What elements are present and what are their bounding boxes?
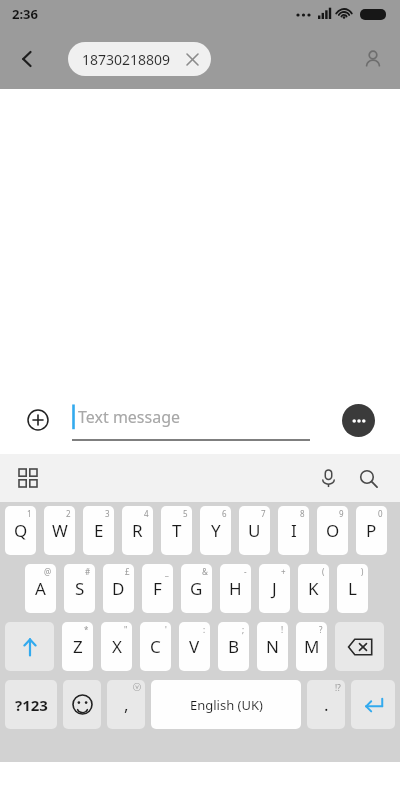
button[interactable]: Y (200, 506, 231, 555)
button[interactable]: Add attachment (19, 401, 57, 439)
staticText: £ (125, 566, 130, 577)
button[interactable]: K (298, 564, 329, 613)
button[interactable]: Z (62, 622, 93, 671)
staticText: _ (165, 566, 169, 577)
staticText: # (85, 566, 91, 577)
button[interactable]: L (337, 564, 368, 613)
button[interactable] (5, 622, 54, 671)
staticText: 2:36 (12, 5, 38, 23)
staticText: B (228, 635, 240, 658)
button[interactable]: C (140, 622, 171, 671)
staticText: C (150, 635, 161, 658)
staticText: 8 (300, 508, 305, 519)
button[interactable]: D (103, 564, 134, 613)
button[interactable]: O (317, 506, 348, 555)
staticText: R (132, 519, 143, 542)
button[interactable]: E (83, 506, 114, 555)
button[interactable]: Voice input (308, 458, 348, 498)
staticText: T (172, 519, 182, 542)
staticText: . (324, 693, 329, 716)
button[interactable]: Keyboard menu (8, 458, 48, 498)
staticText: ; (242, 624, 245, 635)
button[interactable]: W (44, 506, 75, 555)
staticText: 7 (261, 508, 266, 519)
staticText: S (75, 577, 85, 600)
staticText: 18730218809 (82, 50, 171, 69)
staticText: 6 (222, 508, 227, 519)
staticText: K (308, 577, 319, 600)
staticText: & (202, 566, 208, 577)
button[interactable] (335, 622, 384, 671)
staticText: H (229, 577, 242, 600)
button[interactable]: 18730218809 (68, 42, 211, 76)
staticText: ! (281, 624, 284, 635)
button[interactable] (63, 680, 101, 729)
staticText: U (248, 519, 261, 542)
button[interactable]: Contacts (346, 32, 400, 86)
button[interactable]: R (122, 506, 153, 555)
staticText: ' (165, 624, 167, 635)
staticText: J (272, 577, 277, 600)
staticText: M (304, 635, 320, 658)
staticText: English (UK) (190, 696, 263, 714)
button[interactable]: H (220, 564, 251, 613)
staticText: X (112, 635, 122, 658)
staticText: N (266, 635, 279, 658)
staticText: I (291, 519, 297, 542)
button[interactable]: English (UK) (151, 680, 301, 729)
staticText: V (189, 635, 200, 658)
button[interactable]: Back (0, 32, 54, 86)
staticText: Z (73, 635, 83, 658)
button[interactable]: T (161, 506, 192, 555)
button[interactable]: , (107, 680, 145, 729)
staticText: , (124, 693, 129, 716)
button[interactable]: X (101, 622, 132, 671)
button[interactable]: ?123 (5, 680, 57, 729)
staticText: 3 (105, 508, 110, 519)
button[interactable]: A (25, 564, 56, 613)
staticText: P (366, 519, 377, 542)
staticText: W (52, 519, 68, 542)
staticText: A (35, 577, 46, 600)
staticText: 1 (27, 508, 32, 519)
staticText: E (94, 519, 104, 542)
staticText: : (203, 624, 206, 635)
staticText: ? (319, 624, 323, 635)
button[interactable]: Text message (72, 399, 310, 441)
staticText: D (112, 577, 125, 600)
button[interactable]: V (179, 622, 210, 671)
staticText: G (190, 577, 203, 600)
button[interactable]: Remove recipient (183, 50, 201, 68)
staticText: " (124, 624, 128, 635)
staticText: * (84, 624, 89, 635)
button[interactable]: I (278, 506, 309, 555)
button[interactable]: M (296, 622, 327, 671)
button[interactable]: Search (348, 458, 388, 498)
button[interactable]: Q (5, 506, 36, 555)
button[interactable]: B (218, 622, 249, 671)
button[interactable]: J (259, 564, 290, 613)
staticText: F (153, 577, 162, 600)
button[interactable]: S (64, 564, 95, 613)
staticText: Y (211, 519, 221, 542)
staticText: !? (335, 682, 341, 693)
button[interactable]: G (181, 564, 212, 613)
button[interactable] (351, 680, 395, 729)
staticText: ⓥ (133, 682, 141, 692)
button[interactable]: U (239, 506, 270, 555)
button[interactable]: F (142, 564, 173, 613)
staticText: 0 (378, 508, 383, 519)
staticText: 9 (339, 508, 344, 519)
staticText: ( (322, 566, 325, 577)
staticText: 2 (66, 508, 71, 519)
staticText: - (244, 566, 247, 577)
staticText: @ (44, 566, 52, 577)
button[interactable]: More options (342, 404, 375, 437)
button[interactable]: . (307, 680, 345, 729)
staticText: ) (361, 566, 364, 577)
button[interactable]: P (356, 506, 387, 555)
staticText: O (326, 519, 340, 542)
staticText: L (348, 577, 357, 600)
staticText: 5 (183, 508, 188, 519)
button[interactable]: N (257, 622, 288, 671)
